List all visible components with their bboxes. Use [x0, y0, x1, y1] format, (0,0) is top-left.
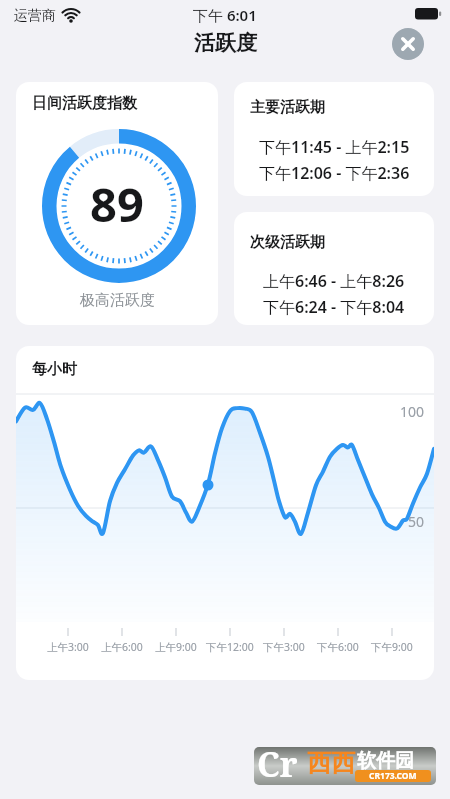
staticText: 下午11:45 - 上午2:15 — [259, 136, 410, 158]
staticText: 50 — [360, 512, 424, 531]
staticText: 次级活跃期 — [250, 233, 325, 252]
staticText: 上午3:00 — [47, 640, 89, 654]
staticText: 89 — [90, 172, 144, 236]
staticText: 上午9:00 — [155, 640, 197, 654]
staticText: 下午 6:01 — [193, 5, 257, 25]
staticText: 下午12:00 — [206, 640, 254, 654]
staticText: 主要活跃期 — [250, 98, 325, 117]
staticText: CR173.COM — [369, 770, 417, 782]
staticText: 下午6:00 — [317, 640, 359, 654]
staticText: 下午12:06 - 下午2:36 — [259, 162, 410, 184]
staticText: 下午9:00 — [371, 640, 413, 654]
staticText: 运营商 — [14, 7, 56, 25]
staticText: 每小时 — [32, 360, 77, 379]
staticText: 100 — [360, 402, 424, 421]
staticText: 活跃度 — [194, 30, 257, 56]
staticText: 上午6:46 - 上午8:26 — [263, 270, 405, 292]
staticText: Cr — [257, 747, 298, 779]
staticText: 下午3:00 — [263, 640, 305, 654]
staticText: 软件园 — [357, 749, 414, 773]
staticText: 上午6:00 — [101, 640, 143, 654]
button[interactable] — [392, 28, 424, 60]
staticText: 下午6:24 - 下午8:04 — [263, 296, 405, 318]
staticText: 极高活跃度 — [80, 291, 155, 310]
staticText: 西西 — [307, 748, 355, 778]
staticText: 日间活跃度指数 — [32, 94, 137, 113]
